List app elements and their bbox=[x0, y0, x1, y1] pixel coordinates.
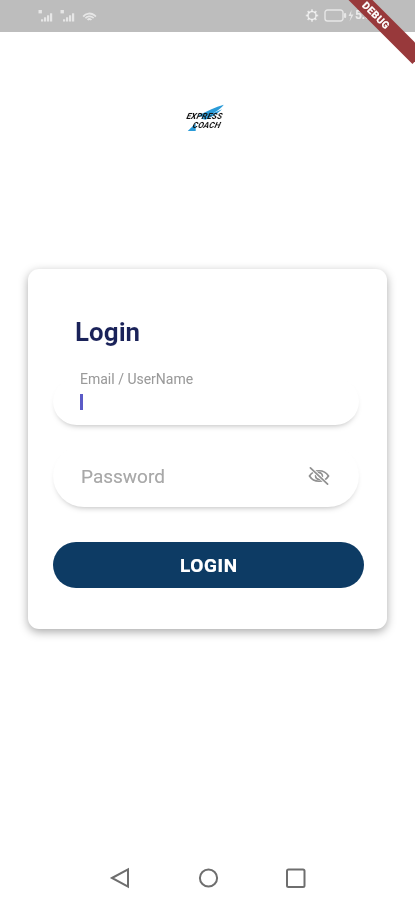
staticText: 5:36 bbox=[355, 8, 379, 22]
button[interactable]: Show password bbox=[307, 464, 331, 488]
staticText: EXPRESS bbox=[186, 111, 222, 121]
staticText: Email / UserName bbox=[80, 371, 194, 387]
button[interactable]: LOGIN bbox=[53, 542, 364, 588]
staticText: Login bbox=[75, 317, 141, 347]
button[interactable]: Back bbox=[96, 854, 144, 900]
staticText: COACH bbox=[192, 120, 220, 130]
staticText: DEBUG bbox=[359, 0, 392, 32]
staticText: LOGIN bbox=[180, 554, 238, 576]
button[interactable]: Home bbox=[184, 854, 232, 900]
button[interactable]: Recent apps bbox=[272, 854, 320, 900]
button[interactable]: Password bbox=[53, 445, 359, 507]
staticText: Password bbox=[81, 465, 165, 487]
button[interactable] bbox=[53, 378, 359, 425]
